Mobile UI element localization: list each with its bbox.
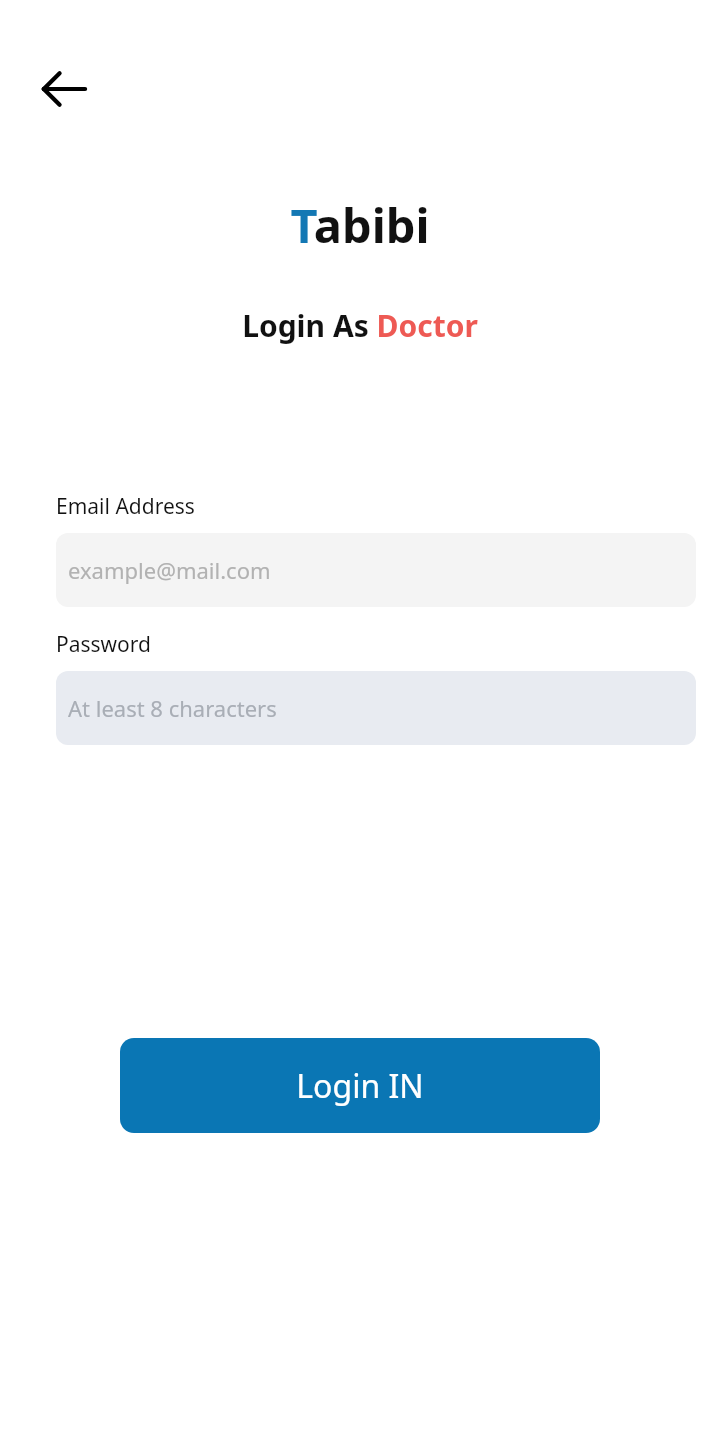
staticText: Password [56,630,151,659]
staticText: Tabibi [0,193,720,257]
staticText: Email Address [56,492,195,521]
staticText: Login IN [296,1064,424,1108]
button[interactable]: At least 8 characters [56,671,696,745]
button[interactable]: example@mail.com [56,533,696,607]
staticText: example@mail.com [68,555,271,585]
button[interactable]: Login IN [120,1038,600,1133]
staticText: At least 8 characters [68,693,277,723]
staticText: Login As Doctor [0,305,720,346]
button[interactable]: Back [30,55,98,123]
